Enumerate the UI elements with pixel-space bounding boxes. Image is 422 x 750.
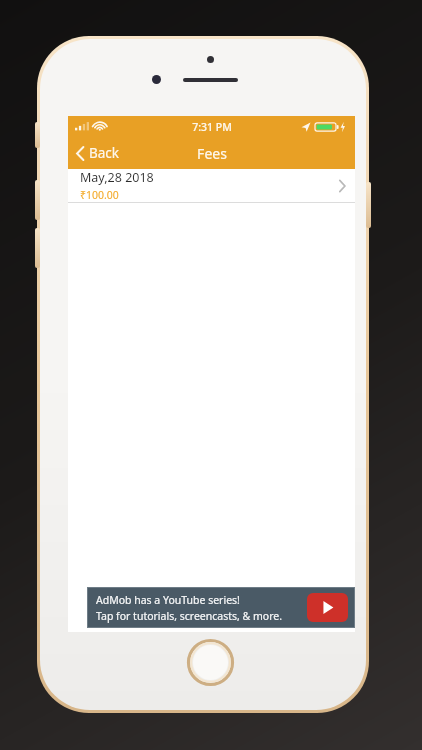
- staticText: May,28 2018: [80, 169, 154, 186]
- staticText: 7:31 PM: [192, 120, 232, 134]
- button[interactable]: AdMob has a YouTube series!: [88, 588, 354, 627]
- staticText: ₹100.00: [80, 188, 119, 202]
- button[interactable]: May,28 2018: [68, 169, 355, 202]
- button[interactable]: Back: [73, 140, 123, 166]
- staticText: Fees: [197, 144, 227, 163]
- staticText: Back: [89, 144, 120, 162]
- staticText: Tap for tutorials, screencasts, & more.: [96, 609, 283, 623]
- button[interactable]: Home: [187, 639, 234, 686]
- button[interactable]: Play YouTube video: [307, 593, 348, 622]
- staticText: AdMob has a YouTube series!: [96, 593, 240, 607]
